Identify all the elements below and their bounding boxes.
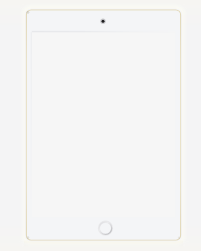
- button[interactable]: Tablet product photo: [0, 0, 201, 251]
